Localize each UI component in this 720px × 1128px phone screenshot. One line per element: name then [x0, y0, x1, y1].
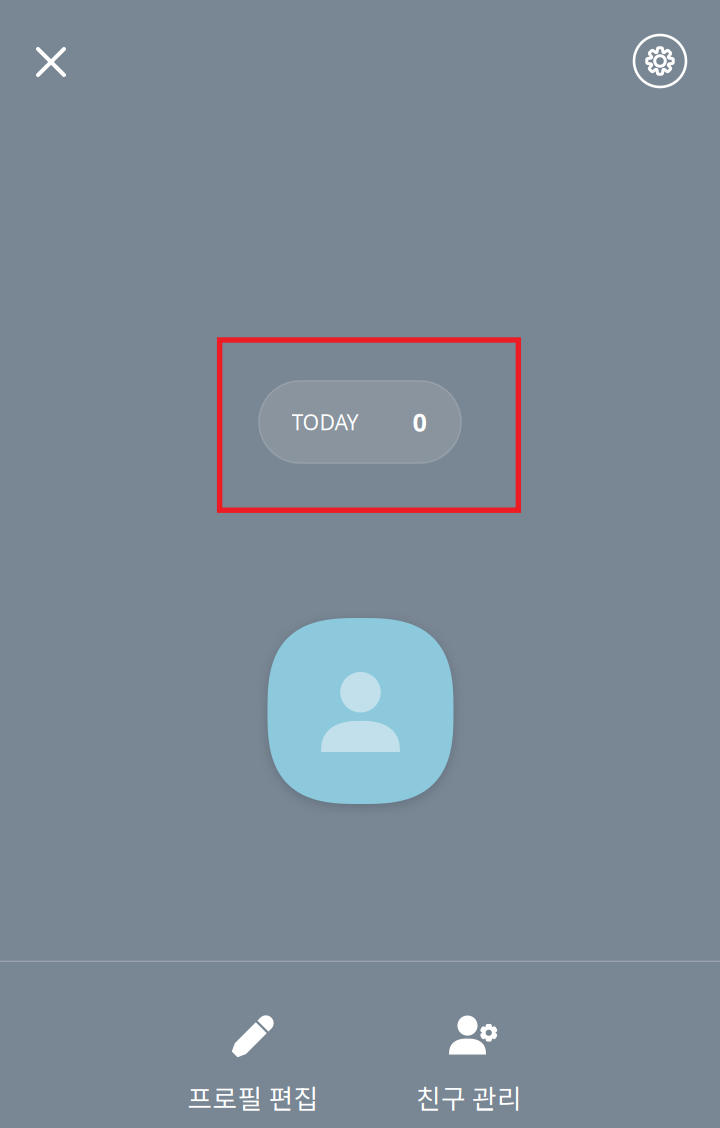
staticText: 0: [412, 405, 426, 439]
staticText: 프로필 편집: [187, 1078, 318, 1116]
button[interactable]: Settings: [622, 23, 698, 99]
staticText: TODAY: [291, 408, 358, 436]
button[interactable]: 프로필 편집: [103, 961, 403, 1128]
button[interactable]: Close: [13, 24, 89, 100]
button[interactable]: TODAY: [259, 381, 461, 463]
button[interactable]: 친구 관리: [319, 961, 619, 1128]
staticText: 친구 관리: [416, 1078, 522, 1116]
